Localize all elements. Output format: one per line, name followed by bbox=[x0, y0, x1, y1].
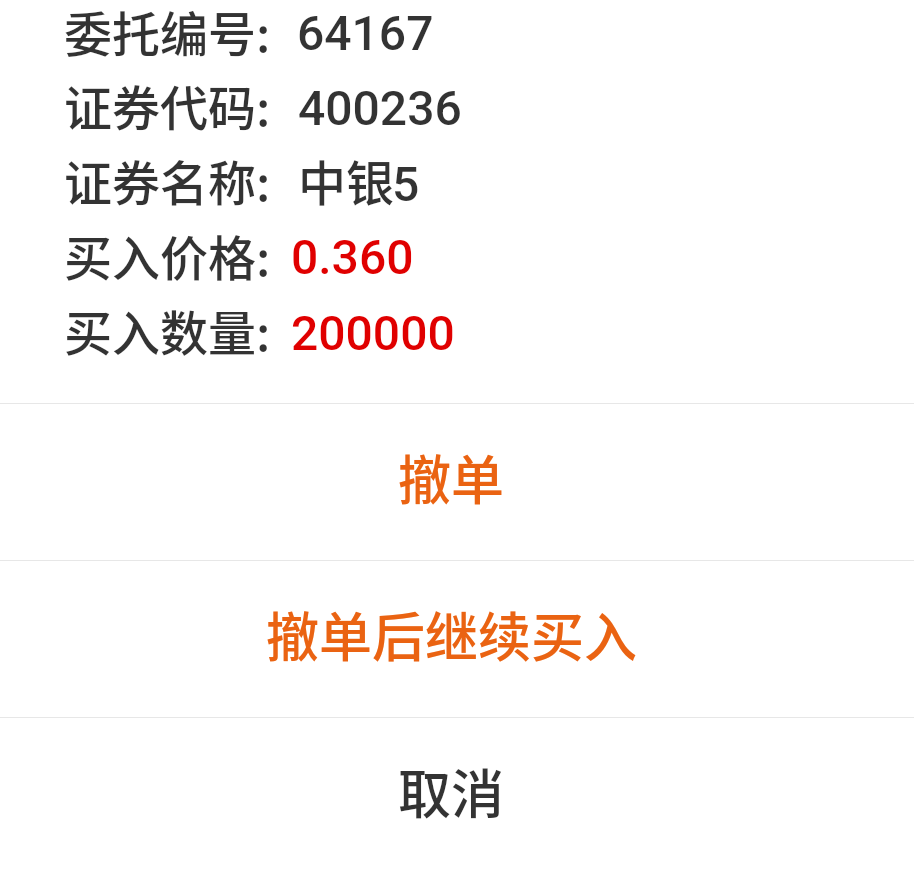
button[interactable]: 撤单后继续买入 bbox=[0, 561, 914, 718]
staticText: 0.360 bbox=[291, 229, 414, 285]
button[interactable]: 撤单 bbox=[0, 404, 914, 561]
staticText: 买入价格: bbox=[64, 220, 271, 290]
button[interactable]: 取消 bbox=[0, 718, 914, 870]
staticText: 中银 bbox=[298, 145, 395, 215]
staticText: 委托编号: bbox=[64, 0, 271, 66]
staticText: 64167 bbox=[297, 5, 434, 61]
staticText: 撤单 bbox=[398, 439, 504, 516]
staticText: 取消 bbox=[398, 753, 504, 830]
staticText: 5 bbox=[392, 156, 420, 212]
staticText: 证券名称: bbox=[64, 145, 271, 215]
staticText: 买入数量: bbox=[64, 295, 271, 365]
staticText: 撤单后继续买入 bbox=[266, 596, 637, 673]
staticText: 证券代码: bbox=[64, 70, 271, 140]
staticText: 400236 bbox=[298, 80, 462, 136]
staticText: 200000 bbox=[291, 305, 455, 361]
